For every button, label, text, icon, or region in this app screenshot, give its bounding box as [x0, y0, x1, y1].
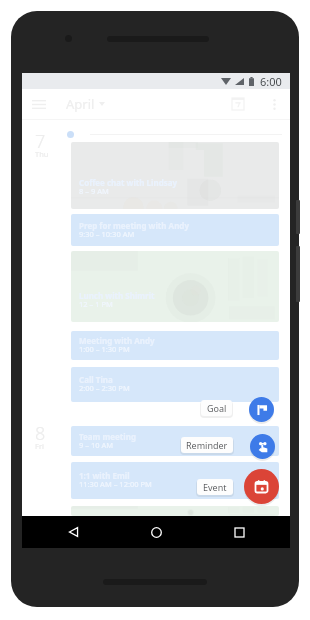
- button[interactable]: Team meeting: [71, 426, 279, 456]
- button[interactable]: Lunch with Shimrit: [71, 251, 279, 322]
- staticText: Thu: [35, 149, 49, 159]
- button[interactable]: Home: [145, 521, 167, 543]
- button[interactable]: Reminder: [181, 437, 233, 453]
- button[interactable]: Reminder: [250, 434, 275, 459]
- staticText: Prep for meeting with Andy: [79, 220, 189, 231]
- staticText: 8 – 9 AM: [79, 186, 109, 196]
- button[interactable]: Recent apps: [228, 521, 250, 543]
- staticText: Call Tina: [79, 374, 113, 385]
- button[interactable]: Coffee chat with Lindsay: [71, 142, 279, 209]
- staticText: Meeting with Andy: [79, 335, 155, 346]
- staticText: Goal: [207, 402, 227, 414]
- staticText: Reminder: [186, 439, 228, 451]
- staticText: Lunch with Shimrit: [79, 290, 155, 301]
- button[interactable]: Meeting with Andy: [71, 331, 279, 360]
- staticText: Fri: [35, 441, 44, 451]
- button[interactable]: Jump to today: [227, 93, 249, 115]
- button[interactable]: Prep for meeting with Andy: [71, 214, 279, 246]
- staticText: 2:00 – 2:30 PM: [79, 383, 130, 393]
- staticText: Coffee chat with Lindsay: [79, 177, 178, 188]
- button[interactable]: Call Tina: [71, 367, 279, 402]
- staticText: 8: [35, 421, 46, 446]
- staticText: 11:30 AM – 12:00 PM: [79, 479, 152, 489]
- staticText: 12 – 1 PM: [79, 299, 113, 309]
- staticText: 1:1 with Emil: [79, 470, 130, 481]
- button[interactable]: 1:1 with Emil: [71, 462, 279, 499]
- staticText: 6:00: [260, 74, 282, 89]
- staticText: 1:00 – 1:30 PM: [79, 344, 130, 354]
- button[interactable]: Event: [244, 469, 279, 504]
- button[interactable]: April: [62, 89, 109, 119]
- staticText: 9 – 10 AM: [79, 440, 114, 450]
- staticText: 9:30 – 10:30 AM: [79, 229, 135, 239]
- button[interactable]: Goal: [249, 397, 274, 422]
- staticText: 7: [35, 129, 46, 154]
- button[interactable]: Back: [62, 521, 84, 543]
- button[interactable]: Goal: [201, 400, 232, 416]
- button[interactable]: Open navigation menu: [29, 94, 49, 114]
- staticText: Event: [203, 481, 227, 493]
- button[interactable]: Event: [197, 479, 233, 495]
- staticText: April: [66, 95, 95, 113]
- staticText: Team meeting: [79, 431, 136, 442]
